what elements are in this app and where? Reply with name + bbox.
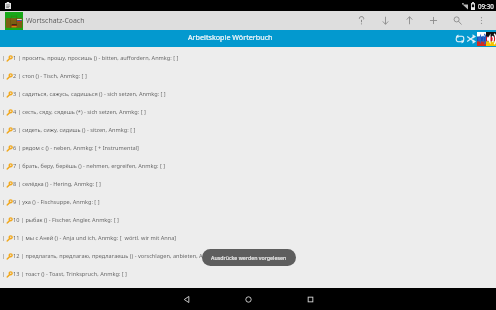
staticText: 7 | брать, беру, берёшь () - nehmen, erg… [13, 162, 166, 170]
button[interactable]: | [0, 175, 496, 193]
button[interactable]: | [0, 49, 496, 67]
staticText: Ausdrücke werden vorgelesen [211, 254, 287, 261]
button[interactable]: Home [217, 288, 279, 310]
staticText: | [2, 126, 6, 134]
staticText: | [2, 144, 6, 152]
staticText: | [2, 54, 6, 62]
staticText: | [2, 252, 6, 260]
staticText: 5 | сидеть, сижу, сидишь () - sitzen, An… [13, 126, 136, 134]
staticText: | [2, 90, 6, 98]
staticText: | [2, 216, 6, 224]
staticText: | [2, 108, 6, 116]
staticText: | [2, 72, 6, 80]
button[interactable]: | [0, 193, 496, 211]
staticText: | [2, 180, 6, 188]
staticText: 1 | просить, прошу, просишь () - bitten,… [13, 54, 179, 62]
button[interactable]: | [0, 139, 496, 157]
button[interactable]: Repeat [454, 30, 466, 47]
button[interactable]: Recents [279, 288, 341, 310]
button[interactable]: Speak Russian [477, 32, 486, 46]
staticText: 6 | рядом с () - neben, Anmkg: [ + Instr… [13, 144, 139, 152]
staticText: | [2, 162, 6, 170]
staticText: 8 | селёдка () - Hering, Anmkg: [ ] [13, 180, 101, 188]
staticText: 13 | тоаст () - Toast, Trinkspruch, Anmk… [13, 270, 127, 278]
staticText: Arbeitskopie Wörterbuch [188, 32, 273, 42]
button[interactable]: | [0, 67, 496, 85]
staticText: | [2, 270, 6, 278]
staticText: 9 | уха () - Fischsuppe, Anmkg: [ ] [13, 198, 100, 206]
staticText: | [2, 198, 6, 206]
staticText: 10 | рыбак () - Fischer, Angler, Anmkg: … [13, 216, 119, 224]
button[interactable]: Search [445, 11, 469, 30]
button[interactable]: Help [349, 11, 373, 30]
button[interactable]: Speak German [486, 32, 496, 46]
button[interactable]: Back [155, 288, 217, 310]
staticText: 11 | мы с Аней () - Anja und ich, Anmkg:… [13, 234, 177, 242]
staticText: 12 | предлагать, предлагаю, предлагаешь … [13, 252, 226, 260]
button[interactable]: Shuffle [466, 30, 477, 47]
staticText: 3 | садиться, сажусь, садишься () - sich… [13, 90, 166, 98]
button[interactable]: | [0, 211, 496, 229]
button[interactable]: | [0, 121, 496, 139]
button[interactable]: | [0, 85, 496, 103]
button[interactable]: More options [469, 11, 493, 30]
staticText: 09:30 [478, 2, 494, 10]
staticText: 2 | стол () - Tisch, Anmkg: [ ] [13, 72, 87, 80]
staticText: Wortschatz-Coach [26, 16, 85, 25]
button[interactable]: | [0, 157, 496, 175]
button[interactable]: | [0, 229, 496, 247]
button[interactable]: | [0, 103, 496, 121]
staticText: 4 | сесть, сяду, сядешь (*) - sich setze… [13, 108, 146, 116]
button[interactable]: Add [421, 11, 445, 30]
button[interactable]: | [0, 265, 496, 283]
staticText: | [2, 234, 6, 242]
button[interactable]: Upload [397, 11, 421, 30]
button[interactable]: | [0, 247, 496, 265]
button[interactable]: Download [373, 11, 397, 30]
